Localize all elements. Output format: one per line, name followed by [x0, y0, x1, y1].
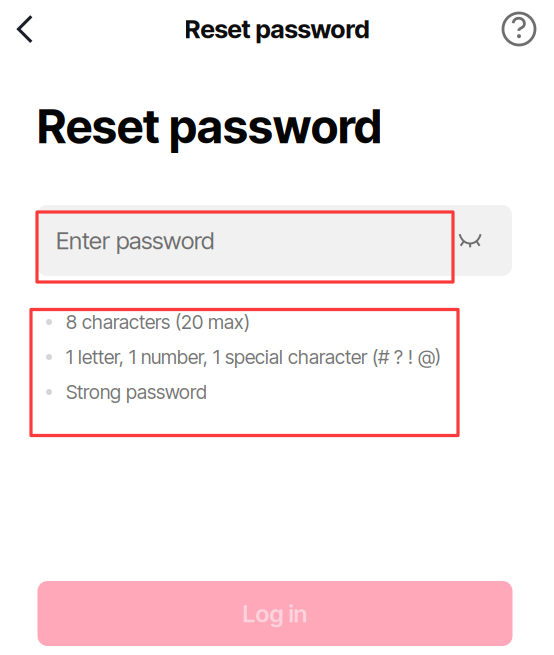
button[interactable]: Help [484, 1, 554, 57]
staticText: 8 characters (20 max) [66, 310, 250, 334]
staticText: 1 letter, 1 number, 1 special character … [66, 345, 441, 369]
staticText: Strong password [66, 380, 207, 404]
staticText: Enter password [56, 226, 214, 255]
staticText: Reset password [37, 98, 382, 154]
staticText: Reset password [184, 14, 369, 44]
staticText: Log in [242, 599, 307, 628]
button[interactable]: Back [0, 1, 50, 57]
button[interactable]: Log in [37, 581, 512, 646]
button[interactable]: Show password [450, 220, 490, 260]
